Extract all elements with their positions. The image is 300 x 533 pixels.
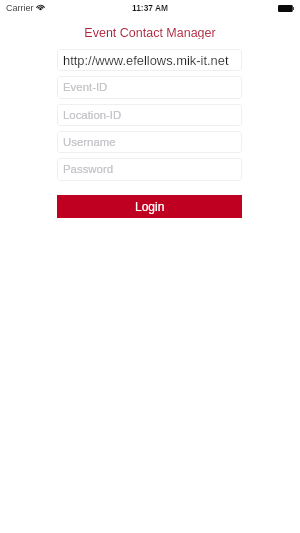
button[interactable]: Login [57, 195, 242, 218]
staticText: http://www.efellows.mik-it.net [63, 53, 229, 67]
staticText: Login [135, 200, 165, 213]
button[interactable]: http://www.efellows.mik-it.net [57, 49, 242, 71]
other: Battery full [278, 5, 294, 12]
staticText: 11:37 AM [132, 3, 169, 12]
button[interactable]: Password [57, 158, 242, 181]
button[interactable]: Event-ID [57, 76, 242, 99]
staticText: Location-ID [63, 109, 122, 122]
staticText: Username [63, 136, 116, 149]
other: Wi-Fi signal [36, 3, 45, 10]
staticText: Carrier [6, 3, 34, 13]
staticText: Password [63, 163, 114, 176]
button[interactable]: Location-ID [57, 104, 242, 126]
staticText: Event-ID [63, 81, 108, 94]
staticText: Event Contact Manager [84, 26, 216, 39]
button[interactable]: Username [57, 131, 242, 153]
